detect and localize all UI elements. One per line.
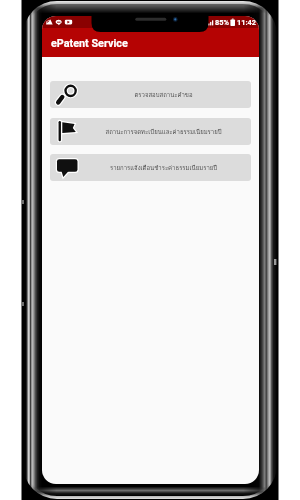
staticText: ePatent Service	[51, 37, 128, 50]
button[interactable]: รายการแจ้งเตือนชำระค่าธรรมเนียมรายปี	[50, 154, 251, 181]
staticText: 85%	[215, 18, 229, 27]
staticText: รายการแจ้งเตือนชำระค่าธรรมเนียมรายปี	[80, 163, 247, 173]
staticText: 11:42	[237, 18, 257, 27]
button[interactable]: สถานะการจดทะเบียนและค่าธรรมเนียมรายปี	[50, 118, 251, 145]
staticText: ตรวจสอบสถานะคำขอ	[80, 90, 247, 100]
button[interactable]: ตรวจสอบสถานะคำขอ	[50, 81, 251, 108]
staticText: สถานะการจดทะเบียนและค่าธรรมเนียมรายปี	[80, 127, 247, 137]
